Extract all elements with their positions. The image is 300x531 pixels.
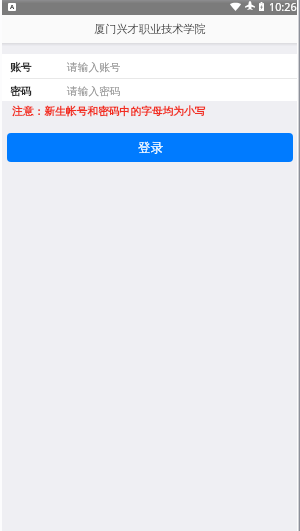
staticText: 登录 [138, 140, 163, 156]
button[interactable]: 密码 [10, 79, 300, 101]
staticText: A [10, 3, 15, 11]
staticText: 请输入账号 [67, 61, 121, 74]
other: Airplane mode on [245, 1, 255, 10]
staticText: 账号 [10, 61, 32, 74]
staticText: 密码 [10, 85, 32, 98]
other: Wi-Fi signal [230, 3, 241, 11]
button[interactable]: 厦门兴才职业技术学院 [0, 15, 300, 43]
staticText: 注意：新生帐号和密码中的字母均为小写 [12, 105, 206, 119]
staticText: 请输入密码 [67, 85, 121, 98]
other: Battery charging [259, 2, 264, 11]
staticText: 10:26 [269, 0, 297, 14]
staticText: 厦门兴才职业技术学院 [94, 22, 206, 36]
button[interactable]: 登录 [7, 133, 293, 162]
button[interactable]: 账号 [10, 54, 300, 78]
